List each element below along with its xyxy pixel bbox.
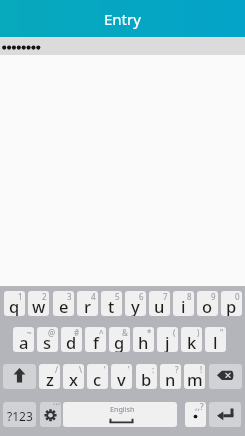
- staticText: 1: [18, 291, 23, 302]
- button[interactable]: !: [184, 364, 205, 389]
- staticText: n: [165, 368, 176, 389]
- staticText: 4: [91, 291, 96, 302]
- staticText: l: [213, 331, 218, 352]
- staticText: :: [152, 364, 155, 375]
- button[interactable]: ?123: [3, 402, 36, 427]
- staticText: b: [141, 368, 152, 389]
- button[interactable]: Shift: [3, 364, 36, 389]
- staticText: c: [93, 368, 102, 389]
- button[interactable]: @: [37, 327, 58, 352]
- button[interactable]: Space: [63, 402, 177, 427]
- staticText: k: [187, 331, 197, 352]
- staticText: English: [110, 404, 135, 414]
- staticText: ?123: [7, 408, 33, 424]
- staticText: !: [200, 364, 203, 375]
- staticText: s: [43, 331, 52, 352]
- staticText: 2: [42, 291, 47, 302]
- button[interactable]: /: [39, 364, 60, 389]
- staticText: /: [55, 364, 58, 375]
- staticText: o: [202, 295, 213, 316]
- staticText: 5: [115, 291, 120, 302]
- button[interactable]: ’: [111, 364, 132, 389]
- staticText: 6: [139, 291, 144, 302]
- staticText: x: [69, 368, 78, 389]
- button[interactable]: Password entry field: [0, 37, 245, 55]
- staticText: #: [74, 327, 80, 338]
- staticText: &: [122, 327, 128, 338]
- staticText: @: [48, 327, 56, 338]
- button[interactable]: ‘: [87, 364, 108, 389]
- button[interactable]: Period: [185, 402, 206, 427]
- button[interactable]: ": [205, 327, 226, 352]
- button[interactable]: 1: [4, 291, 25, 316]
- staticText: \: [79, 364, 82, 375]
- button[interactable]: 0: [221, 291, 242, 316]
- staticText: 8: [187, 291, 192, 302]
- button[interactable]: \: [63, 364, 84, 389]
- staticText: ": [220, 327, 224, 338]
- staticText: 3: [67, 291, 72, 302]
- staticText: d: [66, 331, 77, 352]
- button[interactable]: ): [181, 327, 202, 352]
- button[interactable]: 2: [28, 291, 49, 316]
- staticText: w: [32, 295, 46, 316]
- staticText: y: [131, 295, 140, 316]
- button[interactable]: #: [61, 327, 82, 352]
- staticText: (: [173, 327, 176, 338]
- staticText: ): [197, 327, 200, 338]
- staticText: u: [154, 295, 165, 316]
- staticText: ‘: [104, 364, 106, 375]
- staticText: r: [84, 295, 91, 316]
- button[interactable]: 5: [101, 291, 122, 316]
- staticText: q: [9, 295, 20, 316]
- button[interactable]: &: [109, 327, 130, 352]
- button[interactable]: ?: [160, 364, 181, 389]
- staticText: 7: [163, 291, 168, 302]
- staticText: Entry: [104, 9, 141, 29]
- button[interactable]: Enter: [209, 402, 241, 427]
- staticText: h: [138, 331, 149, 352]
- staticText: ~: [27, 327, 32, 338]
- button[interactable]: 7: [149, 291, 170, 316]
- staticText: p: [226, 295, 237, 316]
- button[interactable]: ~: [13, 327, 34, 352]
- staticText: ?: [175, 364, 179, 375]
- button[interactable]: ^: [85, 327, 106, 352]
- button[interactable]: :: [136, 364, 157, 389]
- staticText: t: [108, 295, 115, 316]
- staticText: e: [59, 295, 69, 316]
- button[interactable]: 3: [53, 291, 74, 316]
- button[interactable]: Settings: [40, 402, 61, 427]
- staticText: 0: [235, 291, 240, 302]
- staticText: i: [181, 295, 186, 316]
- staticText: ’: [128, 364, 130, 375]
- staticText: ^: [99, 327, 104, 338]
- staticText: m: [187, 368, 203, 389]
- button[interactable]: 6: [125, 291, 146, 316]
- button[interactable]: 9: [197, 291, 218, 316]
- button[interactable]: (: [157, 327, 178, 352]
- staticText: f: [93, 331, 99, 352]
- staticText: j: [165, 331, 170, 352]
- button[interactable]: 8: [173, 291, 194, 316]
- staticText: *: [147, 327, 152, 338]
- staticText: ,,?: [195, 402, 204, 412]
- staticText: g: [114, 331, 125, 352]
- staticText: 9: [211, 291, 216, 302]
- staticText: v: [117, 368, 126, 389]
- button[interactable]: *: [133, 327, 154, 352]
- button[interactable]: 4: [77, 291, 98, 316]
- staticText: a: [19, 331, 29, 352]
- staticText: z: [46, 368, 54, 389]
- button[interactable]: Backspace: [209, 364, 242, 389]
